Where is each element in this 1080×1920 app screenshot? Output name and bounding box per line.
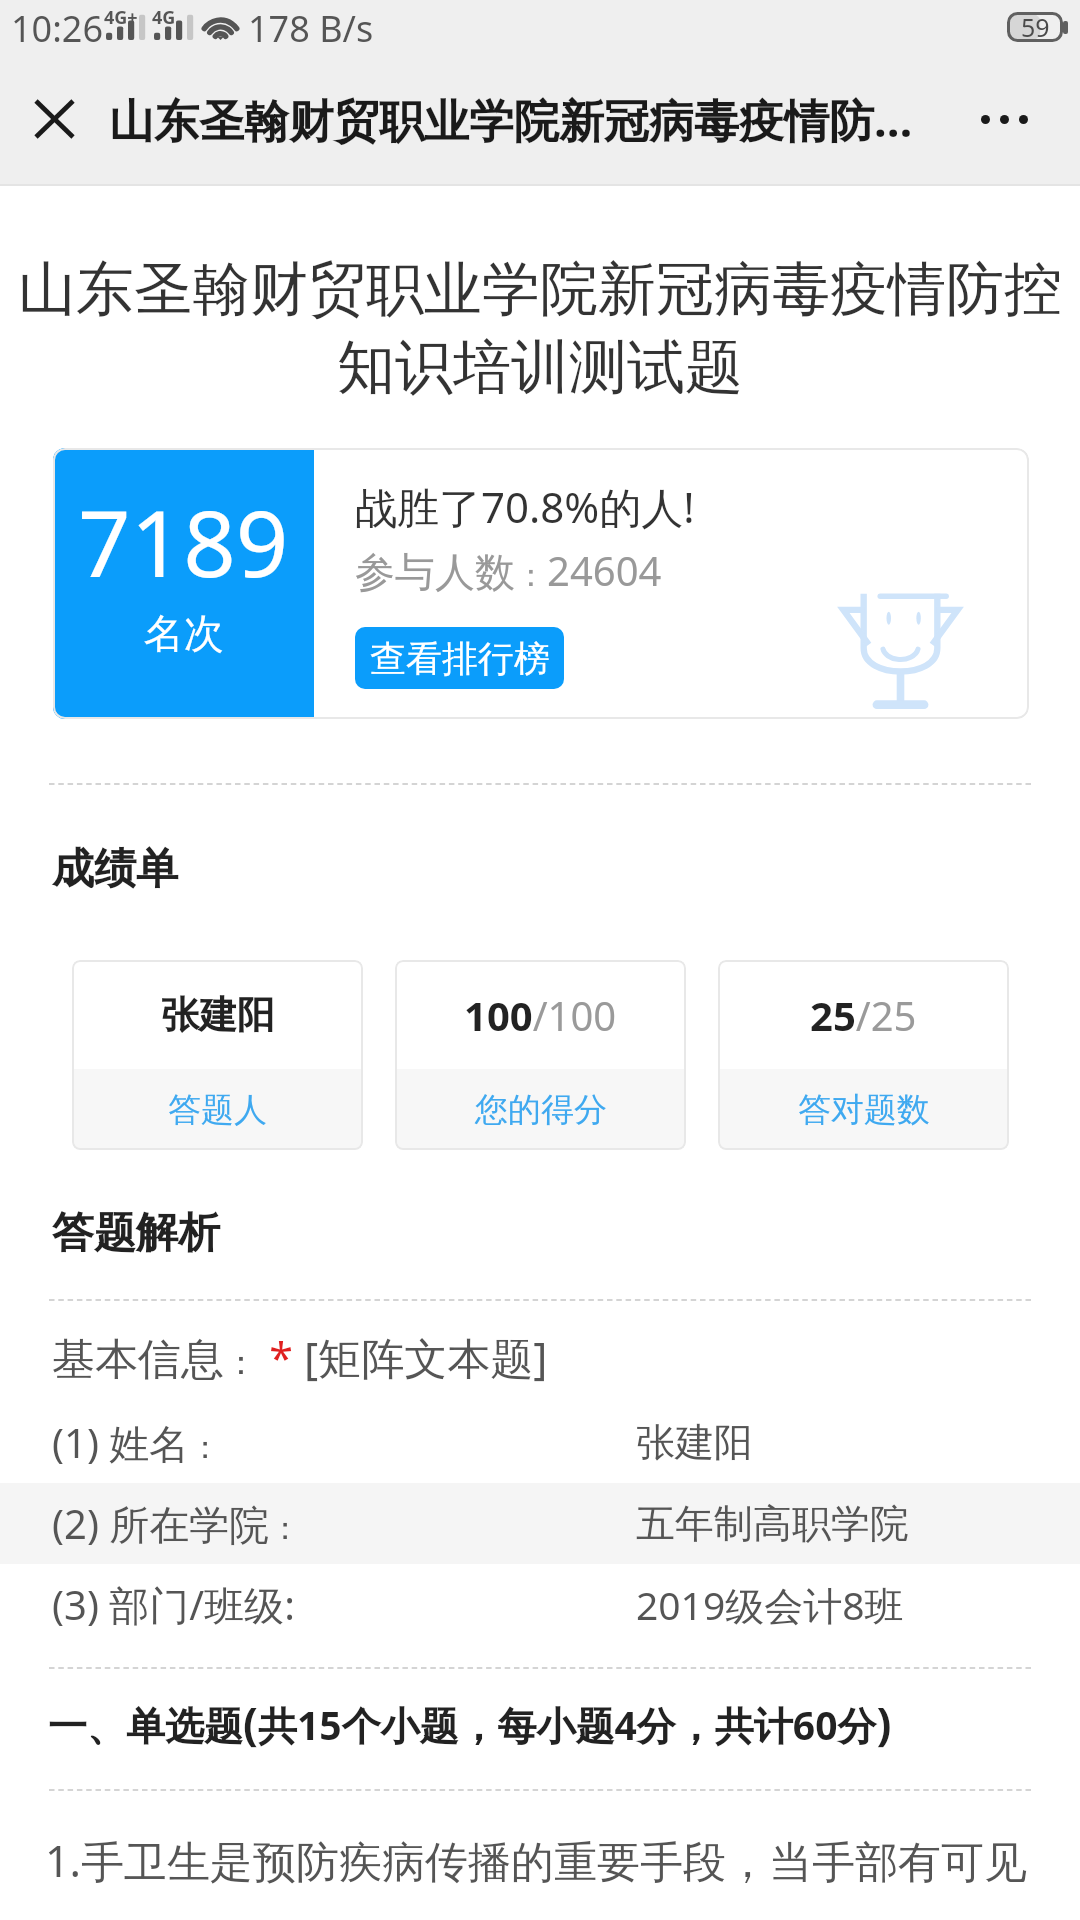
staticText: 59 [1021,10,1050,44]
staticText: 查看排行榜 [370,636,550,681]
staticText: 您的得分 [475,1089,607,1131]
staticText: 张建阳 [636,1418,753,1467]
staticText: 山东圣翰财贸职业学院新冠病毒疫情防控知识培训测试题 [12,253,1068,404]
staticText: 25/25 [810,988,917,1042]
staticText: 成绩单 [52,843,178,896]
staticText: (1) 姓名： [52,1415,222,1470]
staticText: 五年制高职学院 [636,1499,909,1548]
staticText: (3) 部门/班级: [52,1577,295,1632]
staticText: 4G [152,5,176,30]
staticText: 2019级会计8班 [636,1578,904,1631]
button[interactable]: 查看排行榜 [355,627,564,689]
staticText: 10:26 [11,4,104,53]
staticText: 答题人 [168,1089,267,1131]
button[interactable]: 25/25 [718,960,1009,1150]
staticText: 张建阳 [161,991,275,1039]
button[interactable]: 张建阳 [72,960,363,1150]
button[interactable]: More options [928,60,1080,178]
button[interactable]: 100/100 [395,960,686,1150]
staticText: 名次 [144,608,224,658]
staticText: 4G+ [104,5,138,30]
button[interactable]: Close [0,60,109,178]
staticText: 基本信息： * [矩阵文本题] [52,1328,548,1387]
staticText: 战胜了70.8%的人! [355,478,695,535]
staticText: 1.手卫生是预防疾病传播的重要手段，当手部有可见 [45,1831,1028,1890]
staticText: 山东圣翰财贸职业学院新冠病毒疫情防… [109,89,913,150]
staticText: 参与人数：24604 [355,543,662,598]
staticText: (2) 所在学院： [52,1496,302,1551]
staticText: 100/100 [464,988,617,1042]
staticText: 7189 [78,479,289,604]
staticText: 答题解析 [52,1207,220,1260]
staticText: 一、单选题(共15个小题，每小题4分，共计60分) [48,1693,892,1753]
staticText: 答对题数 [798,1089,930,1131]
staticText: 178 B/s [248,4,374,53]
